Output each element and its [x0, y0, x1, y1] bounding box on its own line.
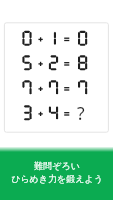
staticText: ? — [77, 101, 85, 125]
staticText: 難問ぞろい — [34, 160, 80, 171]
staticText: ひらめき力を鍛えよう — [11, 173, 103, 184]
button[interactable]: 難問ぞろい — [0, 160, 113, 182]
